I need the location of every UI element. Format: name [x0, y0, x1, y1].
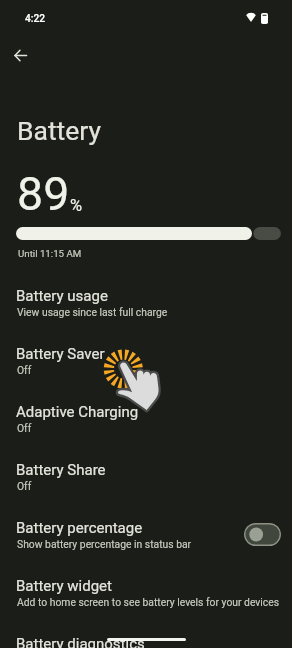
button[interactable]: Battery widget — [0, 569, 292, 627]
button[interactable]: Battery usage — [0, 279, 292, 337]
staticText: Battery Saver — [16, 345, 105, 363]
staticText: 89 — [17, 167, 70, 221]
staticText: % — [70, 196, 83, 215]
staticText: 4:22 — [25, 13, 46, 25]
button[interactable]: Battery percentage toggle — [244, 523, 281, 546]
staticText: Off — [17, 480, 32, 492]
staticText: View usage since last full charge — [17, 306, 168, 318]
button[interactable]: Adaptive Charging — [0, 395, 292, 453]
button[interactable]: Back — [0, 35, 40, 75]
staticText: Add to home screen to see battery levels… — [17, 596, 280, 608]
staticText: Battery percentage — [16, 519, 143, 537]
staticText: Battery widget — [16, 577, 112, 595]
button[interactable]: Battery Saver — [0, 337, 292, 395]
staticText: Show battery percentage in status bar — [17, 538, 192, 550]
staticText: Battery usage — [16, 287, 108, 305]
button[interactable]: Battery diagnostics — [0, 627, 292, 648]
staticText: Battery Share — [16, 461, 106, 479]
staticText: Battery diagnostics — [16, 635, 145, 648]
staticText: Off — [17, 422, 32, 434]
staticText: Off — [17, 364, 32, 376]
staticText: Battery — [17, 115, 102, 146]
button[interactable]: Battery Share — [0, 453, 292, 511]
staticText: Until 11:15 AM — [18, 248, 82, 259]
staticText: Adaptive Charging — [16, 403, 139, 421]
button[interactable]: Battery percentage — [0, 511, 292, 569]
